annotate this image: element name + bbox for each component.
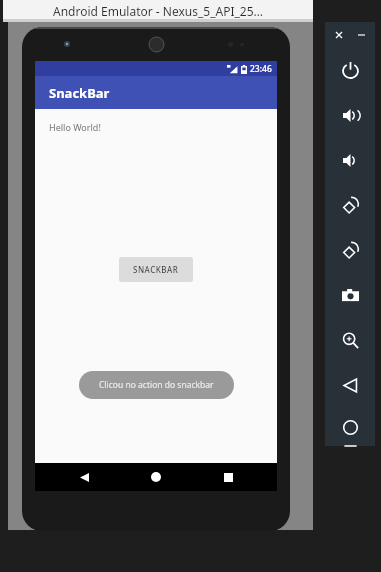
staticText: Hello World!	[49, 121, 101, 133]
staticText: SnackBar	[49, 84, 110, 102]
button[interactable]: Power	[325, 48, 375, 93]
button[interactable]: Recent apps	[205, 463, 251, 491]
button[interactable]: Home	[325, 408, 375, 446]
button[interactable]: Volume up	[325, 93, 375, 138]
button[interactable]: Minimize	[353, 27, 369, 43]
button[interactable]: Rotate right	[325, 228, 375, 273]
button[interactable]: SNACKBAR	[119, 257, 193, 282]
button[interactable]: Zoom	[325, 318, 375, 363]
staticText: Android Emulator - Nexus_5_API_25…	[53, 3, 264, 19]
button[interactable]: Volume down	[325, 138, 375, 183]
staticText: 23:46	[250, 63, 272, 75]
button[interactable]: Home	[133, 463, 179, 491]
staticText: Clicou no action do snackbar	[99, 379, 214, 391]
button[interactable]: Rotate left	[325, 183, 375, 228]
button[interactable]: Back	[61, 463, 107, 491]
button[interactable]: Back	[325, 363, 375, 408]
button[interactable]: Take screenshot	[325, 273, 375, 318]
staticText: SNACKBAR	[133, 264, 179, 275]
button[interactable]: Close	[331, 27, 347, 43]
